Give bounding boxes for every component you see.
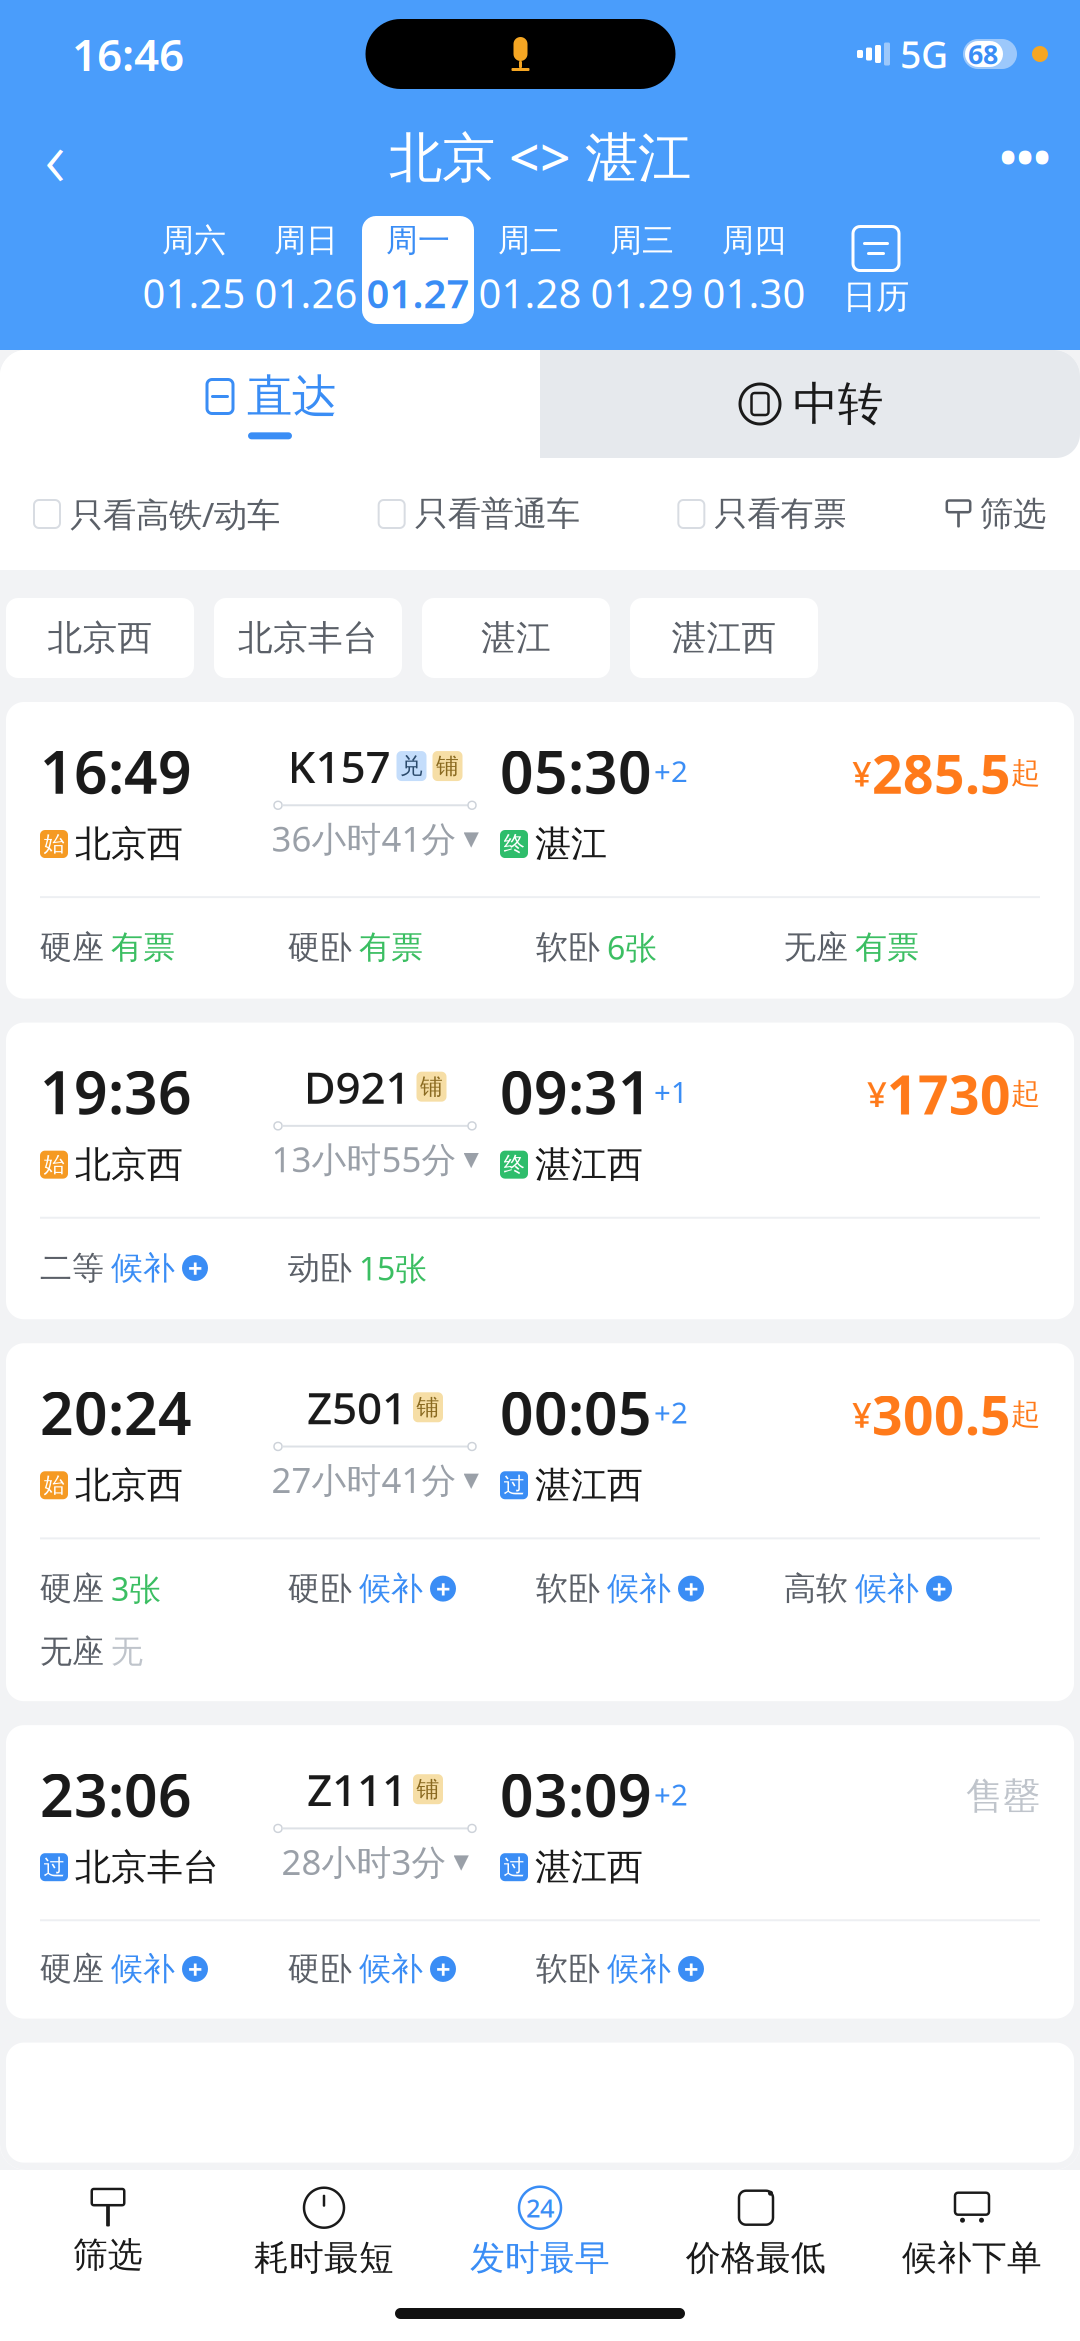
staticText: 05:30	[500, 732, 652, 810]
staticText: 有票	[359, 928, 423, 967]
button[interactable]: 筛选	[0, 2172, 216, 2292]
staticText: 无座	[40, 1632, 104, 1671]
staticText: 6张	[607, 926, 657, 969]
staticText: ¥	[852, 750, 872, 796]
staticText: 湛江	[481, 617, 551, 659]
button[interactable]: 周日	[250, 216, 362, 324]
staticText: 价格最低	[686, 2237, 826, 2279]
button[interactable]: 只看有票	[678, 493, 846, 534]
button[interactable]: 只看高铁/动车	[34, 492, 280, 536]
button[interactable]: 价格最低	[648, 2172, 864, 2292]
button[interactable]: 周三	[586, 216, 698, 324]
staticText: 24	[526, 2191, 554, 2224]
staticText: 软卧	[536, 1949, 600, 1989]
staticText: 硬卧	[288, 1949, 352, 1989]
staticText: 16:46	[72, 25, 184, 83]
staticText: 300.5	[872, 1379, 1011, 1450]
staticText: ¥	[852, 1391, 872, 1437]
staticText: 28小时3分	[281, 1838, 446, 1884]
button[interactable]: 日历	[810, 214, 942, 326]
staticText: 13小时55分	[271, 1136, 456, 1182]
button[interactable]: 直达	[0, 350, 540, 458]
staticText: ▼	[463, 1147, 478, 1170]
staticText: 北京 <> 湛江	[389, 121, 691, 191]
staticText: 直达	[247, 369, 337, 424]
staticText: 周三	[610, 221, 674, 260]
staticText: 铺	[416, 1393, 439, 1421]
button[interactable]: 周四	[698, 216, 810, 324]
staticText: 27小时41分	[271, 1456, 456, 1502]
staticText: 过	[503, 1854, 524, 1880]
staticText: 硬卧	[288, 1569, 352, 1608]
staticText: 01.25	[142, 266, 245, 319]
staticText: 候补	[359, 1569, 423, 1608]
staticText: 过	[503, 1472, 524, 1498]
button[interactable]: 湛江	[422, 598, 610, 678]
staticText: 始	[43, 1472, 64, 1498]
staticText: 68	[968, 36, 998, 72]
staticText: •••	[999, 126, 1050, 186]
button[interactable]: 20:24	[6, 1343, 1074, 1701]
staticText: 硬座	[40, 1569, 104, 1608]
staticText: 硬卧	[288, 928, 352, 967]
staticText: 中转	[793, 376, 883, 432]
staticText: ▼	[463, 1468, 478, 1491]
staticText: +	[188, 1952, 202, 1986]
staticText: 01.28	[478, 266, 581, 319]
staticText: 候补下单	[902, 2237, 1042, 2279]
staticText: 23:06	[40, 1755, 192, 1833]
staticText: 候补	[359, 1949, 423, 1989]
staticText: 候补	[855, 1569, 919, 1608]
staticText: 15张	[359, 1247, 427, 1289]
staticText: 20:24	[40, 1373, 192, 1451]
staticText: 候补	[607, 1949, 671, 1989]
button[interactable]: 候补下单	[864, 2172, 1080, 2292]
staticText: 铺	[436, 752, 459, 780]
staticText: ▼	[463, 827, 478, 850]
button[interactable]: 返回	[0, 111, 110, 201]
staticText: 无座	[784, 928, 848, 967]
staticText: Z111	[307, 1760, 407, 1818]
staticText: 周六	[162, 221, 226, 260]
button[interactable]: 周一	[362, 216, 474, 324]
staticText: +2	[654, 1393, 688, 1432]
staticText: 00:05	[500, 1373, 652, 1451]
staticText: 候补	[607, 1569, 671, 1608]
button[interactable]: 只看普通车	[379, 493, 580, 534]
staticText: +2	[654, 1775, 688, 1814]
staticText: 发时最早	[470, 2237, 610, 2279]
button[interactable]: 更多	[970, 111, 1080, 201]
staticText: 01.30	[702, 266, 805, 319]
staticText: 北京西	[75, 822, 183, 866]
staticText: 01.26	[254, 266, 357, 319]
staticText: 湛江	[535, 822, 607, 866]
button[interactable]: 筛选	[945, 493, 1046, 534]
staticText: 北京西	[75, 1142, 183, 1187]
staticText: 硬座	[40, 1949, 104, 1989]
button[interactable]: 周六	[138, 216, 250, 324]
button[interactable]: 23:06	[6, 1725, 1074, 2019]
staticText: 36小时41分	[271, 815, 456, 861]
button[interactable]: 16:49	[6, 702, 1074, 999]
staticText: 软卧	[536, 1569, 600, 1608]
staticText: 只看普通车	[415, 493, 580, 534]
staticText: 只看有票	[714, 493, 846, 534]
button[interactable]: 19:36	[6, 1023, 1074, 1319]
button[interactable]: 湛江西	[630, 598, 818, 678]
staticText: 周一	[386, 221, 450, 260]
button[interactable]: 周二	[474, 216, 586, 324]
button[interactable]: 北京丰台	[214, 598, 402, 678]
staticText: Z501	[307, 1378, 407, 1436]
staticText: +	[684, 1952, 698, 1986]
staticText: 北京西	[75, 1463, 183, 1507]
button[interactable]: 中转	[540, 350, 1080, 458]
staticText: 硬座	[40, 928, 104, 967]
button[interactable]: 北京西	[6, 598, 194, 678]
staticText: 动卧	[288, 1248, 352, 1288]
staticText: 铺	[416, 1775, 439, 1803]
staticText: 终	[503, 831, 524, 857]
staticText: 北京西	[47, 617, 152, 659]
button[interactable]: 24	[432, 2172, 648, 2292]
staticText: 北京丰台	[238, 617, 378, 659]
button[interactable]: 耗时最短	[216, 2172, 432, 2292]
